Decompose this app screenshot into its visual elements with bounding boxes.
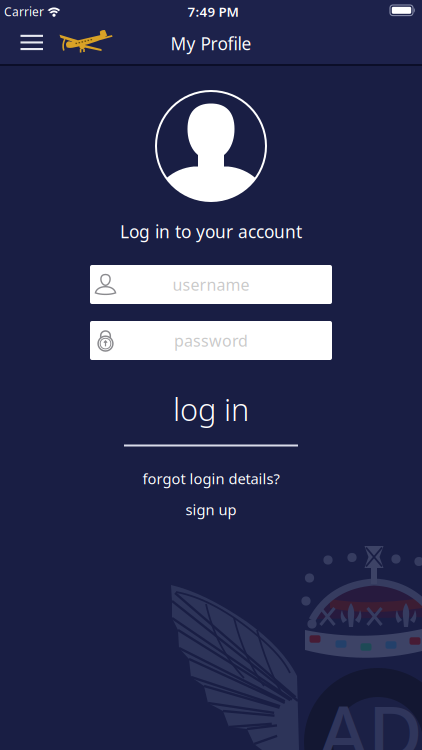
staticText: log in (173, 389, 249, 429)
staticText: password (174, 330, 248, 351)
staticText: Log in to your account (120, 220, 302, 243)
staticText: Carrier (4, 3, 44, 19)
staticText: sign up (185, 500, 236, 519)
button[interactable]: username (90, 265, 332, 304)
staticText: username (172, 274, 249, 295)
button[interactable]: sign up (151, 495, 271, 523)
staticText: AD (319, 681, 422, 750)
button[interactable]: Menu (14, 29, 49, 57)
staticText: 7:49 PM (187, 3, 238, 20)
button[interactable]: password (90, 321, 332, 360)
button[interactable]: forgot login details? (101, 464, 321, 492)
staticText: forgot login details? (142, 469, 279, 488)
staticText: My Profile (170, 32, 251, 55)
button[interactable]: log in (111, 387, 311, 431)
